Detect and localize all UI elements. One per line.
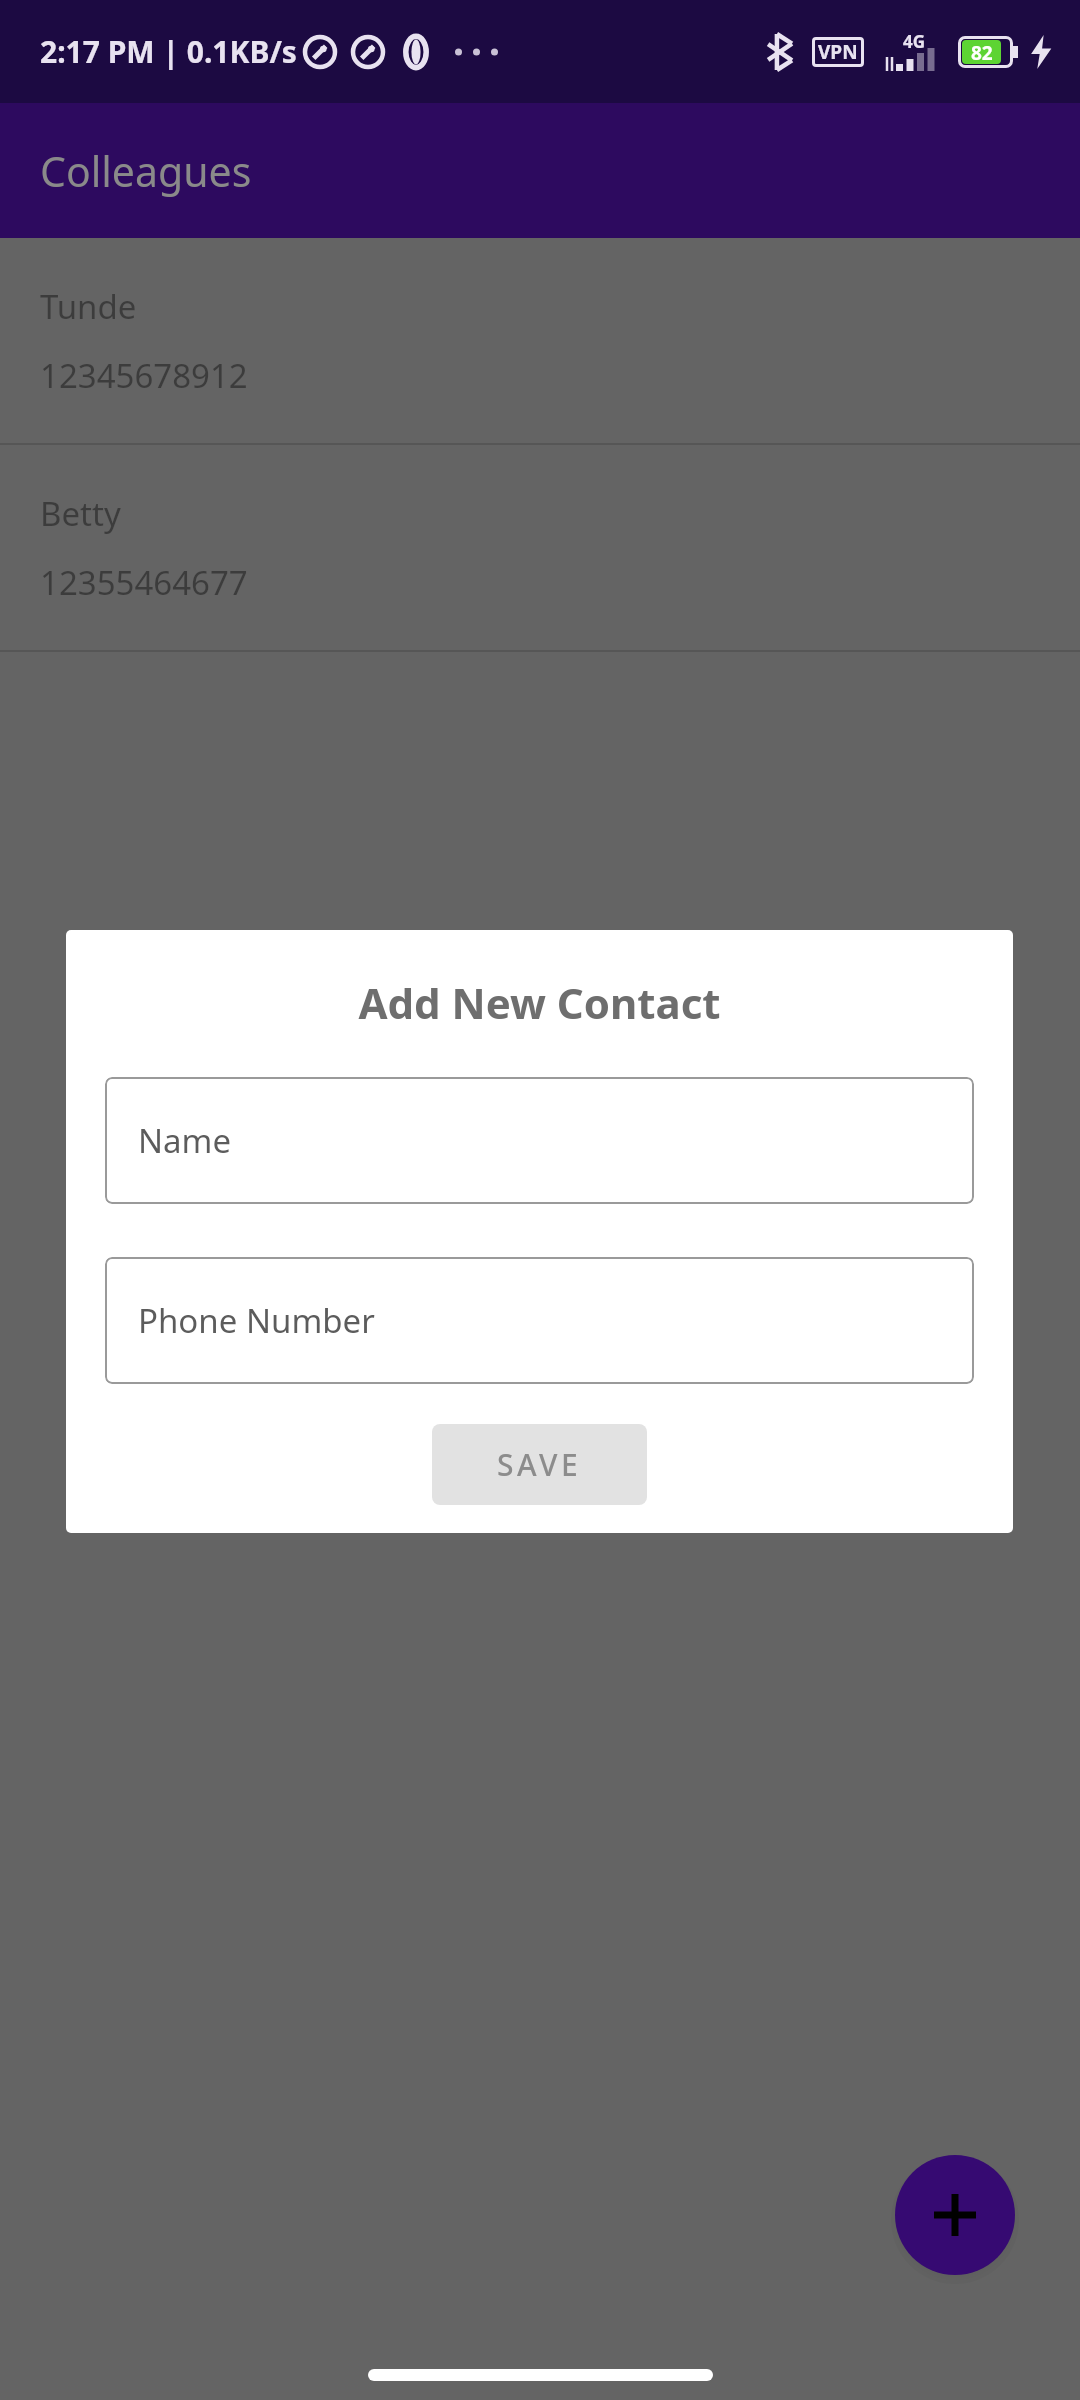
staticText: Phone Number <box>138 1298 375 1343</box>
button[interactable]: Phone Number <box>105 1257 974 1384</box>
staticText: Tunde <box>40 284 137 329</box>
button[interactable]: Add contact <box>895 2155 1015 2275</box>
staticText: 4G <box>903 30 926 53</box>
staticText: 82 <box>971 40 993 64</box>
staticText: Colleagues <box>40 143 252 199</box>
button[interactable]: Name <box>105 1077 974 1204</box>
staticText: Name <box>138 1118 232 1163</box>
button[interactable]: SAVE <box>432 1424 647 1505</box>
button[interactable]: Betty <box>0 445 1080 650</box>
staticText: Add New Contact <box>66 974 1013 1031</box>
staticText: 12345678912 <box>40 353 248 398</box>
staticText: 2:17 PM | 0.1KB/s <box>40 31 297 72</box>
staticText: 12355464677 <box>40 560 248 605</box>
staticText: SAVE <box>497 1444 582 1485</box>
staticText: Betty <box>40 491 121 536</box>
staticText: VPN <box>818 39 858 65</box>
button[interactable]: Tunde <box>0 238 1080 443</box>
